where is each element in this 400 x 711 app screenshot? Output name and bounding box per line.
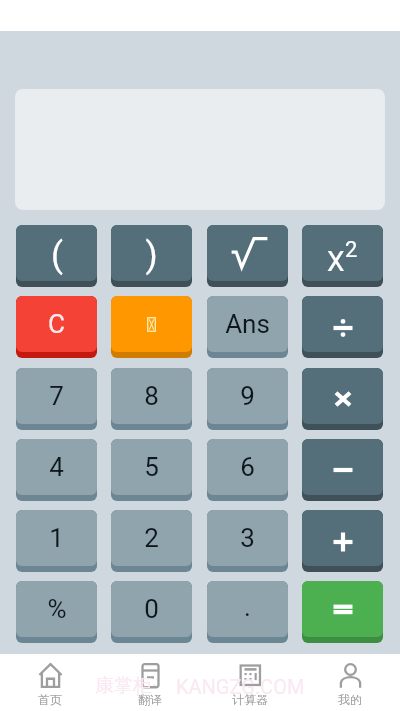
button[interactable]: Calculator xyxy=(200,654,300,711)
button[interactable]: Ans xyxy=(207,296,288,358)
staticText: · xyxy=(152,674,157,696)
button[interactable]: 5 xyxy=(111,439,192,501)
button[interactable]: 0 xyxy=(111,581,192,643)
button[interactable]: 1 xyxy=(16,510,97,572)
button[interactable]: ( xyxy=(16,225,97,287)
button[interactable]: ) xyxy=(111,225,192,287)
button[interactable]: . xyxy=(207,581,288,643)
staticText: 7 xyxy=(49,381,64,411)
staticText: 6 xyxy=(240,452,255,482)
staticText: 计算器 xyxy=(232,692,268,707)
staticText: % xyxy=(47,594,67,624)
button[interactable] xyxy=(302,581,383,643)
staticText: Ans xyxy=(225,309,270,339)
button[interactable] xyxy=(302,510,383,572)
button[interactable] xyxy=(207,225,288,287)
staticText: 3 xyxy=(240,523,255,553)
staticText: . xyxy=(244,592,251,622)
button[interactable]: C xyxy=(16,296,97,358)
button[interactable]: X xyxy=(302,225,383,287)
staticText: 0 xyxy=(144,594,159,624)
staticText: 5 xyxy=(144,452,159,482)
button[interactable] xyxy=(302,296,383,358)
staticText: 9 xyxy=(240,381,255,411)
staticText: 首页 xyxy=(38,692,62,707)
button[interactable] xyxy=(111,296,192,358)
other: Home xyxy=(38,663,63,688)
button[interactable]: Translate xyxy=(100,654,200,711)
staticText: 4 xyxy=(49,452,64,482)
staticText: ( xyxy=(51,235,63,276)
staticText: 1 xyxy=(49,523,64,553)
staticText: 我的 xyxy=(338,692,362,707)
button[interactable]: 4 xyxy=(16,439,97,501)
button[interactable]: 9 xyxy=(207,368,288,430)
staticText: C xyxy=(48,309,65,339)
button[interactable] xyxy=(302,439,383,501)
staticText: 2 xyxy=(144,523,159,553)
other: Translate xyxy=(138,663,163,688)
button[interactable]: Profile xyxy=(300,654,400,711)
button[interactable]: % xyxy=(16,581,97,643)
staticText: X xyxy=(327,245,345,278)
staticText: 康掌柜 xyxy=(95,674,152,698)
button[interactable]: 2 xyxy=(111,510,192,572)
button[interactable]: 8 xyxy=(111,368,192,430)
button[interactable]: 3 xyxy=(207,510,288,572)
button[interactable]: Home xyxy=(0,654,100,711)
other: Profile xyxy=(338,663,363,688)
staticText: 2 xyxy=(345,237,358,263)
staticText: ) xyxy=(145,235,158,276)
button[interactable]: 7 xyxy=(16,368,97,430)
button[interactable]: 6 xyxy=(207,439,288,501)
staticText: KANGZG.COM xyxy=(176,675,305,698)
button[interactable] xyxy=(302,368,383,430)
other: Calculator xyxy=(238,663,263,688)
staticText: 翻译 xyxy=(138,692,162,707)
staticText: 8 xyxy=(144,381,159,411)
